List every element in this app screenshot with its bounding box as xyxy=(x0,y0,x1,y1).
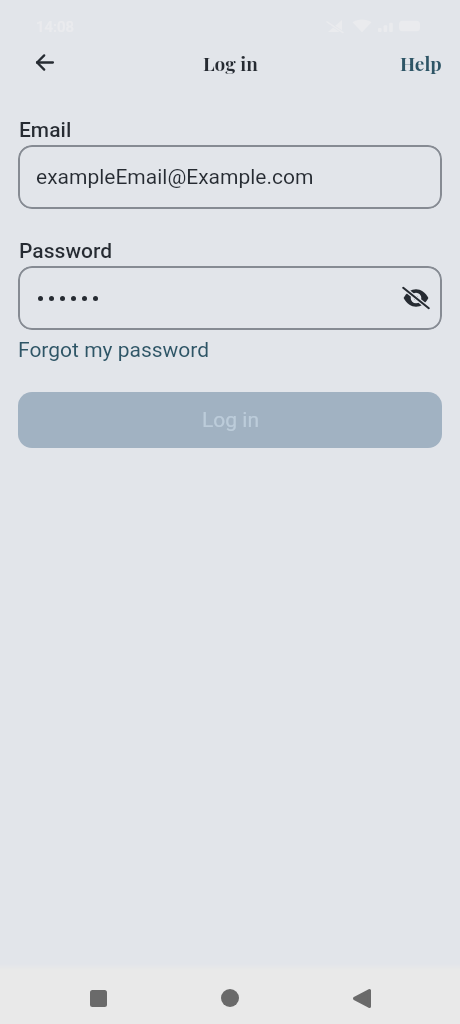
staticText: exampleEmail@Example.com xyxy=(36,165,314,190)
button[interactable]: Log in xyxy=(18,392,442,448)
staticText: Log in xyxy=(203,50,258,75)
staticText: 14:08 xyxy=(36,18,75,36)
button[interactable]: Back xyxy=(342,978,382,1018)
staticText: Email xyxy=(19,118,72,143)
button[interactable]: exampleEmail@Example.com xyxy=(18,145,442,209)
button[interactable]: Forgot my password xyxy=(18,338,210,363)
button[interactable]: Recent apps xyxy=(78,978,118,1018)
staticText: Help xyxy=(400,50,442,75)
button[interactable]: Help xyxy=(392,44,450,81)
staticText: Forgot my password xyxy=(18,338,210,363)
staticText: Password xyxy=(19,239,113,264)
button[interactable] xyxy=(18,266,442,330)
staticText: Log in xyxy=(202,408,259,433)
button[interactable]: Home xyxy=(210,978,250,1018)
button[interactable]: Back xyxy=(27,44,63,80)
button[interactable]: Show password xyxy=(396,278,436,318)
